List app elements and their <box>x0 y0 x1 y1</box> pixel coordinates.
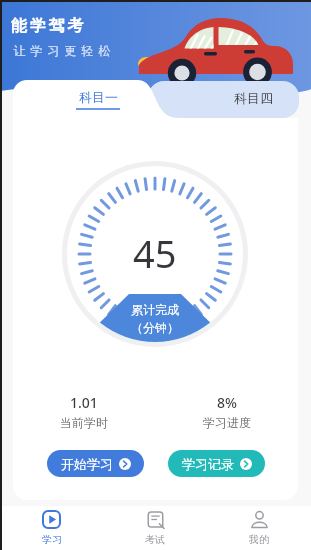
staticText: 累计完成 <box>131 302 179 317</box>
staticText: 学习 <box>42 533 62 546</box>
staticText: 学习进度 <box>203 415 251 430</box>
button[interactable]: 学习 <box>0 506 103 550</box>
button[interactable]: 科目四 <box>148 81 299 118</box>
button[interactable]: 我的 <box>207 506 311 550</box>
staticText: 当前学时 <box>60 415 108 430</box>
staticText: 我的 <box>249 533 269 546</box>
staticText: 科目四 <box>234 90 273 106</box>
staticText: 8% <box>217 393 237 412</box>
button[interactable]: 学习记录 <box>168 450 265 477</box>
button[interactable]: 考试 <box>103 506 207 550</box>
staticText: （分钟） <box>131 320 179 335</box>
staticText: 1.01 <box>70 393 98 412</box>
staticText: 科目一 <box>79 89 118 105</box>
staticText: 让学习更轻松 <box>11 43 113 58</box>
staticText: 能学驾考 <box>11 16 87 36</box>
staticText: 45 <box>133 227 177 279</box>
staticText: 考试 <box>145 533 165 546</box>
button[interactable]: 科目一 <box>43 84 153 114</box>
button[interactable]: 开始学习 <box>47 450 144 477</box>
staticText: 学习记录 <box>182 456 234 472</box>
staticText: 开始学习 <box>61 456 113 472</box>
